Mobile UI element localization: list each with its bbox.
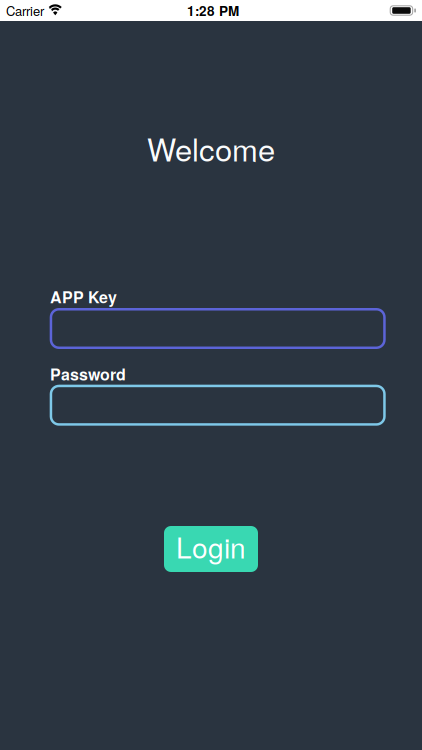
staticText: 1:28 PM	[187, 1, 239, 20]
button[interactable]: Login	[164, 526, 258, 572]
staticText: APP Key	[50, 285, 117, 308]
staticText: Login	[176, 526, 246, 567]
staticText: Welcome	[147, 126, 275, 170]
staticText: Carrier	[6, 1, 44, 20]
staticText: Password	[50, 362, 126, 385]
